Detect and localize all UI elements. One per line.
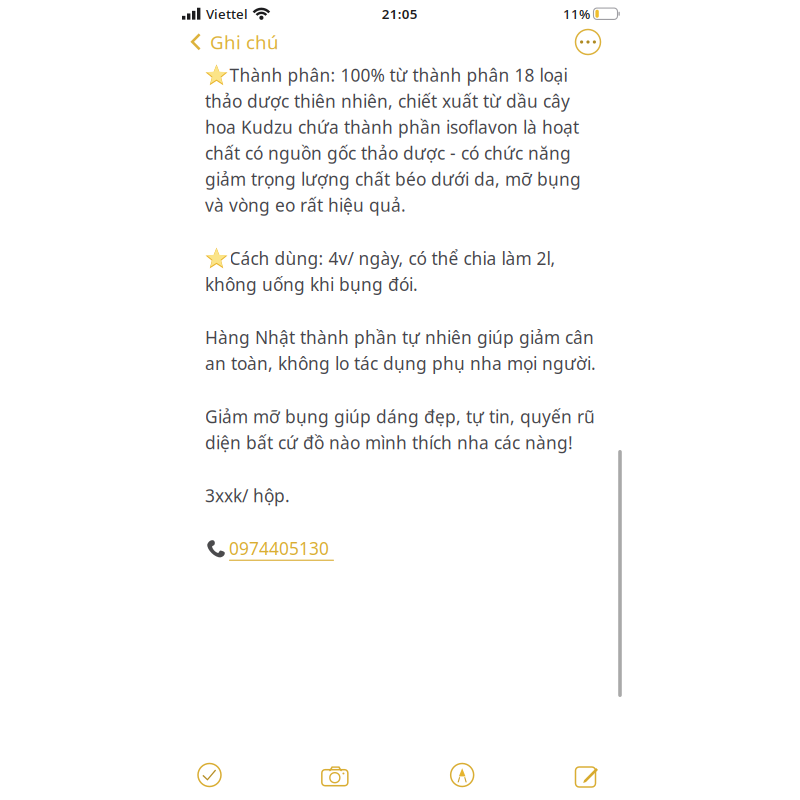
button[interactable]: Ghi chú xyxy=(189,27,279,57)
button[interactable]: Markup xyxy=(431,753,494,797)
staticText: Viettel xyxy=(206,5,248,23)
staticText: diện bất cứ đồ nào mình thích nha các nà… xyxy=(205,431,573,454)
staticText: 11% xyxy=(563,5,590,23)
button[interactable]: New note xyxy=(557,753,620,797)
button[interactable]: More options xyxy=(574,28,602,56)
staticText: Cách dùng: 4v/ ngày, có thể chia làm 2l, xyxy=(229,247,555,270)
staticText: an toàn, không lo tác dụng phụ nha mọi n… xyxy=(205,352,596,375)
button[interactable]: 0974405130 xyxy=(205,536,625,562)
staticText: 0974405130 xyxy=(229,537,329,560)
staticText: Thành phân: 100% từ thành phân 18 loại xyxy=(229,63,567,86)
staticText: 21:05 xyxy=(382,5,418,23)
staticText: không uống khi bụng đói. xyxy=(205,273,418,296)
staticText: chất có nguồn gốc thảo dược - có chức nă… xyxy=(205,141,571,164)
staticText: giảm trọng lượng chất béo dưới da, mỡ bụ… xyxy=(205,167,581,190)
staticText: thảo dược thiên nhiên, chiết xuất từ dầu… xyxy=(205,89,570,112)
staticText: Hàng Nhật thành phần tự nhiên giúp giảm … xyxy=(205,326,594,349)
staticText: và vòng eo rất hiệu quả. xyxy=(205,193,406,216)
button[interactable]: Camera xyxy=(304,753,367,797)
staticText: 3xxk/ hộp. xyxy=(205,484,290,507)
staticText: hoa Kudzu chứa thành phần isoflavon là h… xyxy=(205,115,579,138)
staticText: Ghi chú xyxy=(210,30,279,54)
button[interactable]: Checklist xyxy=(178,753,241,797)
staticText: Giảm mỡ bụng giúp dáng đẹp, tự tin, quyế… xyxy=(205,405,595,428)
